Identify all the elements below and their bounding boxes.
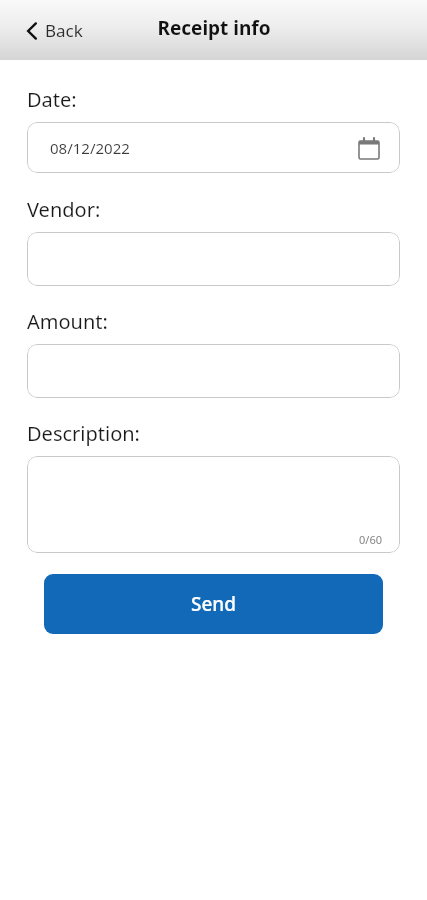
- staticText: Amount:: [27, 308, 108, 335]
- staticText: Back: [45, 19, 83, 42]
- staticText: Description:: [27, 420, 140, 447]
- button[interactable]: 08/12/2022: [27, 122, 400, 173]
- staticText: 0/60: [359, 532, 382, 547]
- button[interactable]: [27, 344, 400, 398]
- button[interactable]: 0/60: [27, 456, 400, 553]
- button[interactable]: Send: [44, 574, 383, 634]
- staticText: Date:: [27, 86, 77, 113]
- staticText: Send: [191, 591, 237, 617]
- button[interactable]: Pick date: [356, 135, 382, 161]
- staticText: Receipt info: [157, 15, 271, 41]
- staticText: 08/12/2022: [50, 138, 130, 158]
- button[interactable]: [27, 232, 400, 286]
- button[interactable]: Back: [20, 13, 89, 48]
- staticText: Vendor:: [27, 196, 101, 223]
